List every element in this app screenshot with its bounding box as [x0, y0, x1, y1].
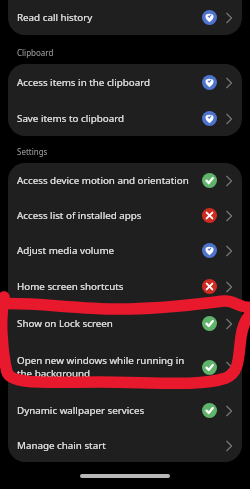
staticText: Save items to clipboard	[17, 112, 196, 125]
staticText: Home screen shortcuts	[17, 280, 196, 293]
other: Open	[225, 439, 233, 453]
other: Allowed	[202, 316, 217, 331]
other: Denied	[202, 208, 217, 223]
button[interactable]: Save items to clipboard	[8, 100, 242, 136]
other: Ask	[202, 10, 217, 25]
other: Open	[225, 209, 233, 223]
staticText: Settings	[17, 146, 48, 157]
button[interactable]: Adjust media volume	[8, 233, 242, 268]
button[interactable]: Dynamic wallpaper services	[8, 392, 242, 428]
staticText: Access device motion and orientation	[17, 174, 196, 187]
staticText: Clipboard	[17, 47, 54, 58]
other: Denied	[202, 279, 217, 294]
button[interactable]: Access items in the clipboard	[8, 64, 242, 100]
staticText: Read call history	[17, 11, 196, 24]
staticText: Access items in the clipboard	[17, 76, 196, 89]
other: Open	[225, 11, 233, 25]
staticText: Show on Lock screen	[17, 317, 196, 330]
other: Open	[225, 360, 233, 374]
other: Open	[225, 280, 233, 294]
button[interactable]: Access device motion and orientation	[8, 163, 242, 198]
other: Allowed	[202, 360, 217, 375]
staticText: Open new windows while running in the ba…	[17, 354, 196, 380]
staticText: Adjust media volume	[17, 244, 196, 257]
other: Open	[225, 174, 233, 188]
other: Open	[225, 76, 233, 90]
button[interactable]: Open new windows while running in the ba…	[8, 342, 242, 392]
other: Ask	[202, 243, 217, 258]
other: Ask	[202, 111, 217, 126]
staticText: Manage chain start	[17, 439, 196, 452]
button[interactable]: Home screen shortcuts	[8, 268, 242, 305]
other: Open	[225, 244, 233, 258]
other: Ask	[202, 75, 217, 90]
other: Open	[225, 112, 233, 126]
other: Open	[225, 317, 233, 331]
staticText: Dynamic wallpaper services	[17, 404, 196, 417]
button[interactable]: Access list of installed apps	[8, 198, 242, 233]
staticText: Access list of installed apps	[17, 209, 196, 222]
button[interactable]: Read call history	[8, 0, 242, 35]
button[interactable]: Show on Lock screen	[8, 305, 242, 342]
button[interactable]: Manage chain start	[8, 428, 242, 462]
other: Allowed	[202, 173, 217, 188]
other: Allowed	[202, 403, 217, 418]
other: Open	[225, 404, 233, 418]
